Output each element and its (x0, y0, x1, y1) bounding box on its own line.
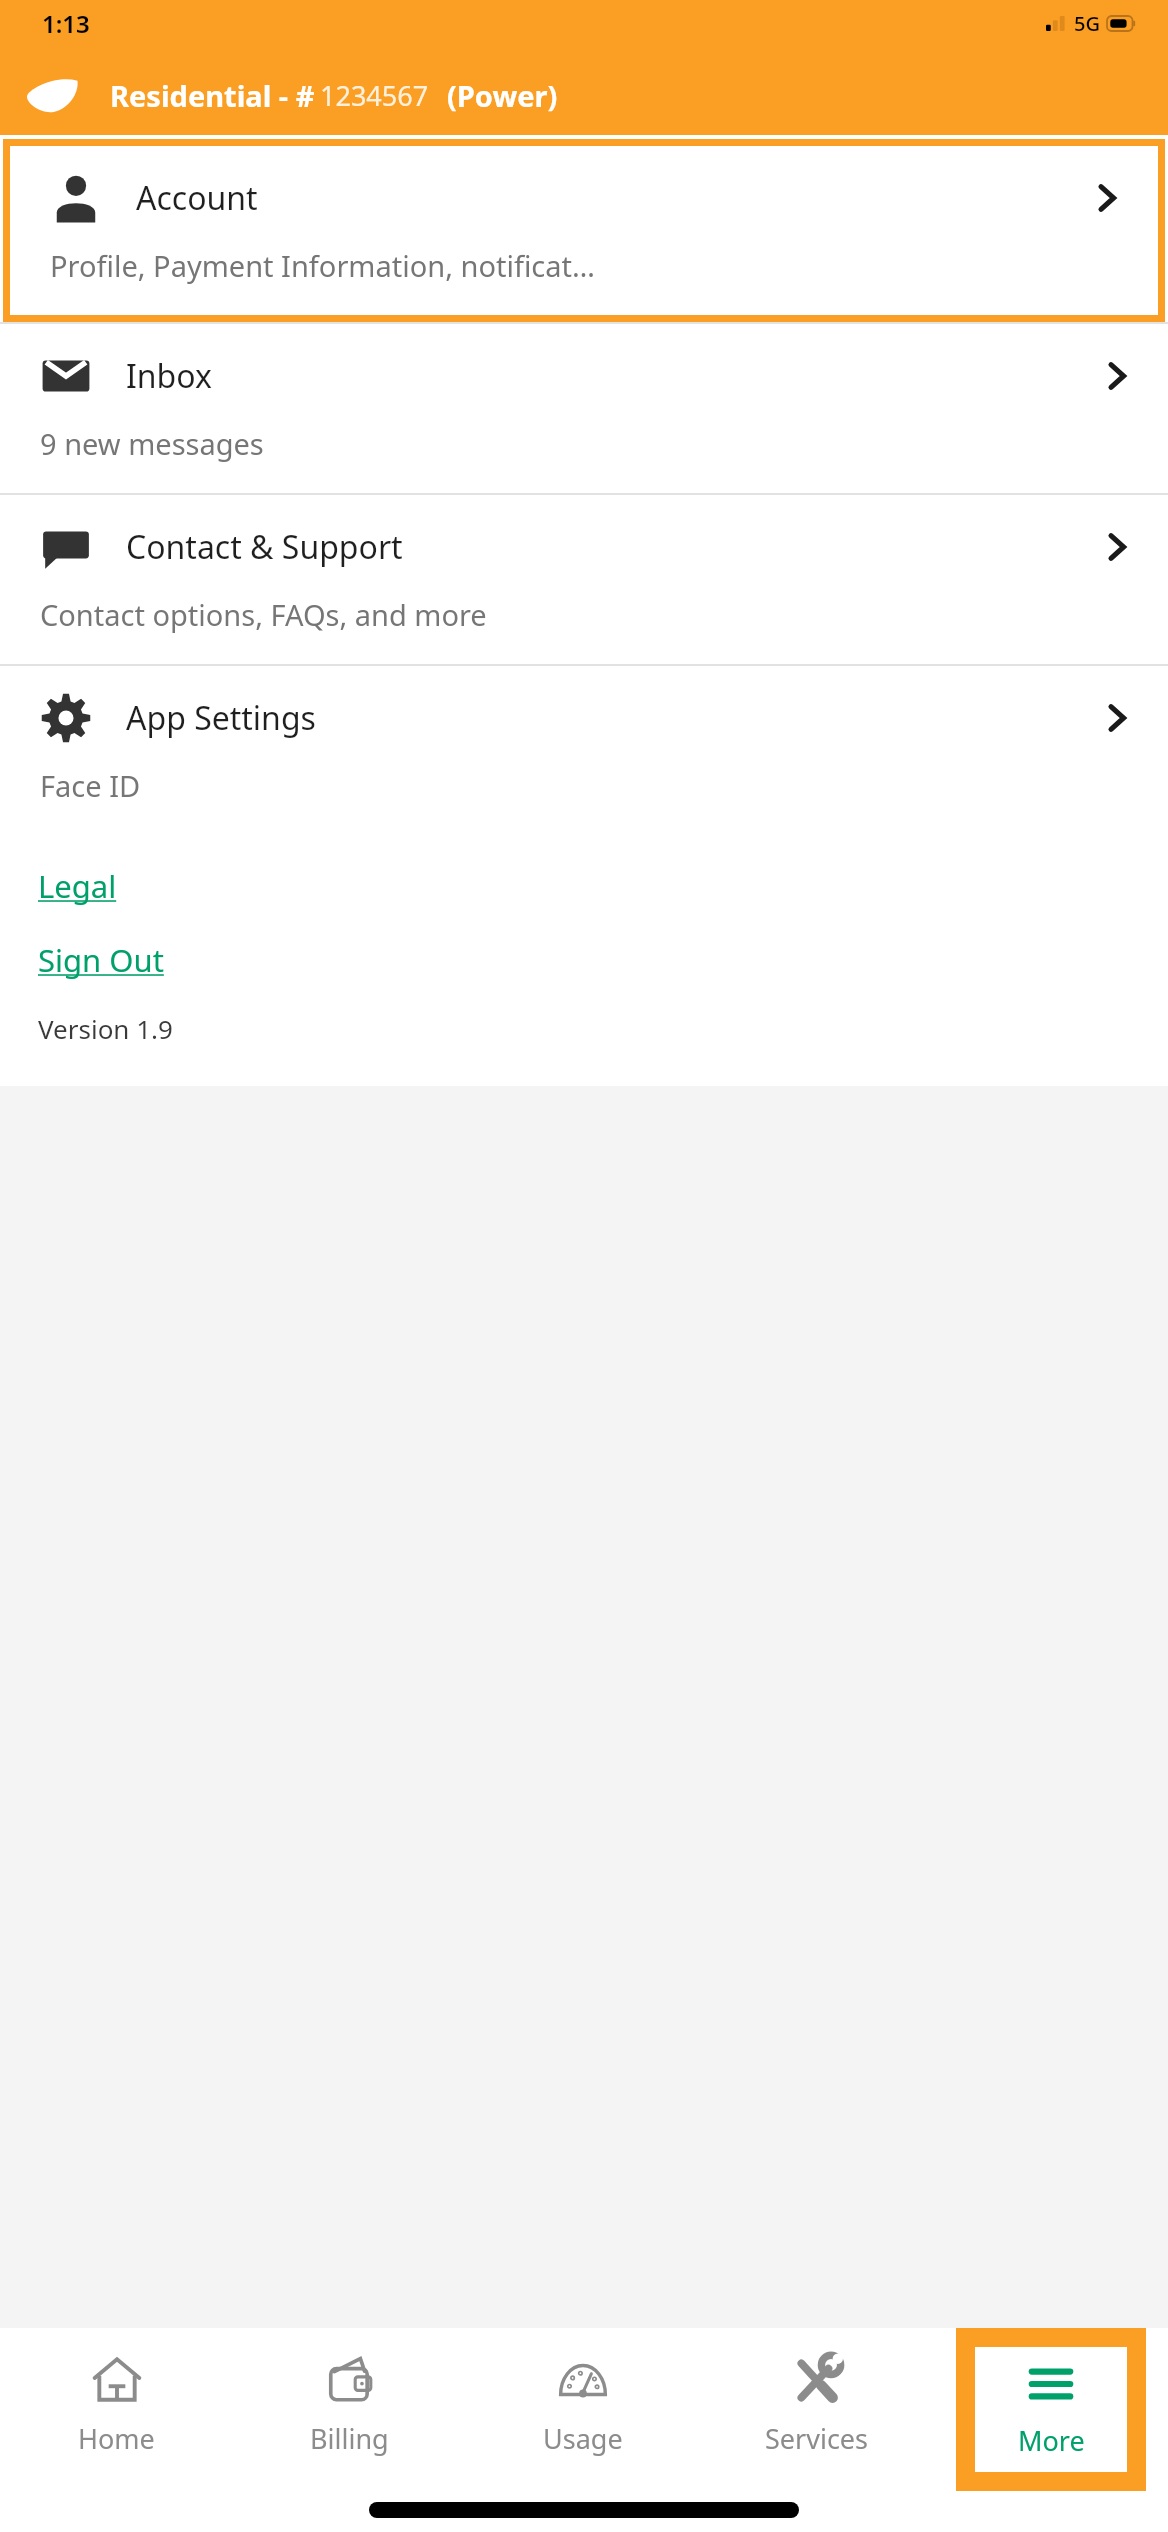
staticText: Account (136, 176, 258, 220)
staticText: Billing (310, 2420, 389, 2457)
button[interactable]: Contact & Support (0, 495, 1168, 664)
staticText: Contact & Support (126, 525, 403, 569)
other: Open (1102, 361, 1132, 391)
staticText: Home (78, 2420, 155, 2457)
staticText: Residential - # (110, 76, 315, 115)
staticText: Contact options, FAQs, and more (40, 595, 487, 634)
staticText: Services (765, 2420, 869, 2457)
other: Open (1102, 703, 1132, 733)
button[interactable]: Sign Out (38, 939, 164, 981)
button[interactable]: More (975, 2347, 1127, 2472)
staticText: Usage (543, 2420, 623, 2457)
staticText: (Power) (447, 76, 558, 115)
staticText: Profile, Payment Information, notificat… (50, 246, 595, 285)
button[interactable]: Usage (466, 2328, 700, 2491)
button[interactable]: Services (700, 2328, 934, 2491)
staticText: 1:13 (42, 7, 90, 40)
staticText: Inbox (126, 354, 212, 398)
button[interactable]: App Settings (0, 666, 1168, 835)
button[interactable]: Billing (233, 2328, 466, 2491)
staticText: 9 new messages (40, 424, 264, 463)
other: Open (1102, 532, 1132, 562)
button[interactable]: Home (0, 2328, 233, 2491)
button[interactable]: Legal (38, 865, 117, 907)
staticText: App Settings (126, 696, 316, 740)
button[interactable]: Inbox (0, 324, 1168, 493)
staticText: More (1018, 2422, 1085, 2459)
other: Open (1092, 183, 1122, 213)
button[interactable]: Account (10, 146, 1158, 315)
staticText: 1234567 (320, 77, 429, 114)
staticText: 5G (1074, 10, 1100, 37)
staticText: Face ID (40, 766, 141, 805)
staticText: Version 1.9 (38, 1011, 173, 1046)
